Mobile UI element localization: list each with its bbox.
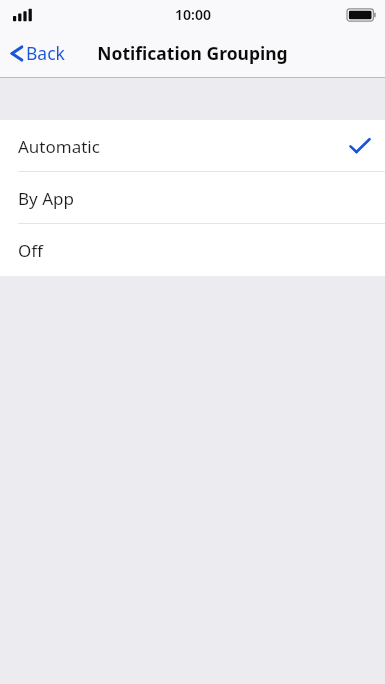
staticText: Notification Grouping bbox=[97, 41, 288, 65]
button[interactable]: Off bbox=[0, 224, 385, 276]
staticText: Back bbox=[26, 41, 65, 65]
other: Selected bbox=[349, 136, 371, 156]
staticText: Off bbox=[18, 239, 43, 262]
staticText: 10:00 bbox=[175, 5, 211, 24]
button[interactable]: By App bbox=[0, 172, 385, 224]
button[interactable]: Automatic bbox=[0, 120, 385, 172]
staticText: By App bbox=[18, 187, 74, 210]
staticText: Automatic bbox=[18, 135, 100, 158]
button[interactable]: Back bbox=[0, 37, 73, 69]
